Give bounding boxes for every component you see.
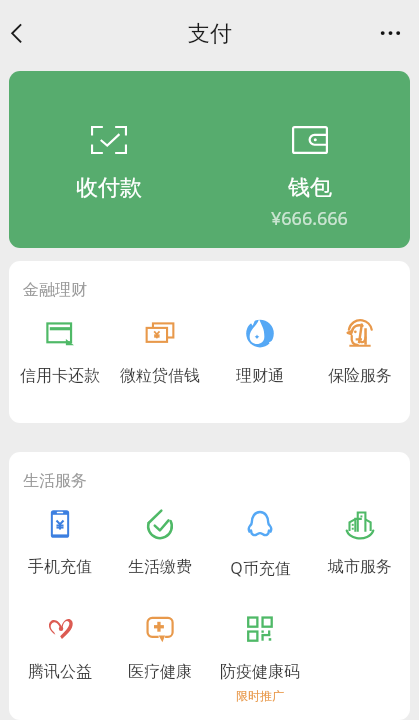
staticText: 信用卡还款: [20, 366, 100, 386]
staticText: 理财通: [236, 366, 284, 386]
button[interactable]: 腾讯公益: [9, 614, 110, 682]
button[interactable]: 钱包: [209, 71, 410, 248]
button[interactable]: 收付款: [9, 71, 209, 248]
staticText: 限时推广: [236, 688, 284, 703]
staticText: 城市服务: [328, 557, 392, 577]
staticText: 微粒贷借钱: [120, 366, 200, 386]
staticText: 保险服务: [328, 366, 392, 386]
button[interactable]: 医疗健康: [110, 614, 210, 682]
staticText: 生活缴费: [128, 557, 192, 577]
staticText: 支付: [188, 20, 232, 48]
button[interactable]: 信用卡还款: [9, 318, 110, 386]
staticText: 防疫健康码: [220, 662, 300, 682]
staticText: ¥666.666: [271, 206, 348, 231]
staticText: 金融理财: [23, 280, 87, 300]
staticText: 生活服务: [23, 471, 87, 491]
staticText: 手机充值: [28, 557, 92, 577]
button[interactable]: 微粒贷借钱: [110, 318, 210, 386]
button[interactable]: 防疫健康码: [210, 614, 310, 703]
staticText: Q币充值: [230, 557, 291, 579]
button[interactable]: Back: [0, 9, 34, 57]
button[interactable]: Q币充值: [210, 509, 310, 579]
staticText: 收付款: [76, 174, 142, 202]
button[interactable]: 手机充值: [9, 509, 110, 577]
staticText: 医疗健康: [128, 662, 192, 682]
button[interactable]: 生活缴费: [110, 509, 210, 577]
button[interactable]: 理财通: [210, 318, 310, 386]
staticText: 钱包: [288, 174, 332, 202]
button[interactable]: 城市服务: [310, 509, 410, 577]
button[interactable]: More options: [375, 9, 419, 57]
staticText: 腾讯公益: [28, 662, 92, 682]
button[interactable]: 保险服务: [310, 318, 410, 386]
